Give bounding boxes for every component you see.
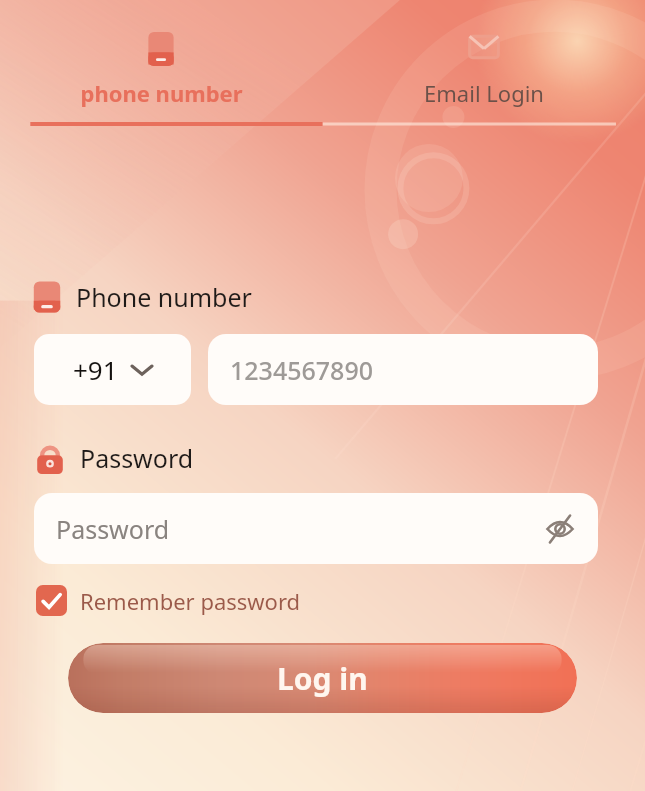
staticText: Email Login: [424, 78, 544, 108]
staticText: Password: [80, 441, 194, 475]
button[interactable]: Remember password: [36, 585, 301, 616]
button[interactable]: +91: [34, 334, 191, 405]
staticText: +91: [73, 352, 118, 387]
staticText: Phone number: [76, 280, 252, 314]
button[interactable]: Show password: [539, 508, 581, 550]
staticText: Log in: [277, 658, 368, 699]
button[interactable]: Email Login: [322, 0, 645, 122]
staticText: Remember password: [80, 586, 301, 616]
staticText: 1234567890: [230, 353, 374, 387]
button[interactable]: Password: [34, 493, 598, 564]
staticText: phone number: [80, 78, 243, 108]
button[interactable]: Log in: [68, 643, 577, 713]
staticText: Password: [56, 512, 170, 546]
button[interactable]: 1234567890: [208, 334, 598, 405]
button[interactable]: phone number: [0, 0, 322, 122]
